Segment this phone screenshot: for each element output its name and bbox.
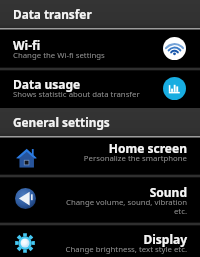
staticText: Change brightness, text style etc. xyxy=(47,244,187,255)
other: Display xyxy=(15,233,35,253)
other: Sound xyxy=(15,188,36,209)
other: Data usage xyxy=(163,77,186,100)
staticText: Display xyxy=(143,231,187,247)
staticText: Home screen xyxy=(108,140,187,156)
other: Wi-fi xyxy=(163,37,186,60)
button[interactable]: Wi-fi xyxy=(0,30,200,69)
staticText: General settings xyxy=(13,114,110,130)
button[interactable]: Home screen xyxy=(0,137,200,176)
button[interactable]: Sound xyxy=(0,176,200,224)
button[interactable]: Display xyxy=(0,224,200,257)
staticText: Change the Wi-fi settings xyxy=(13,50,163,61)
button[interactable]: Data usage xyxy=(0,69,200,108)
staticText: Data usage xyxy=(13,76,81,92)
staticText: Personalize the smartphone xyxy=(37,153,187,164)
staticText: Shows statistic about data transfer xyxy=(13,89,163,100)
staticText: Wi-fi xyxy=(13,37,41,53)
staticText: Data transfer xyxy=(13,6,92,22)
staticText: Change volume, sound, vibration etc. xyxy=(61,197,187,216)
staticText: Sound xyxy=(149,184,187,200)
other: Home screen xyxy=(16,148,37,169)
